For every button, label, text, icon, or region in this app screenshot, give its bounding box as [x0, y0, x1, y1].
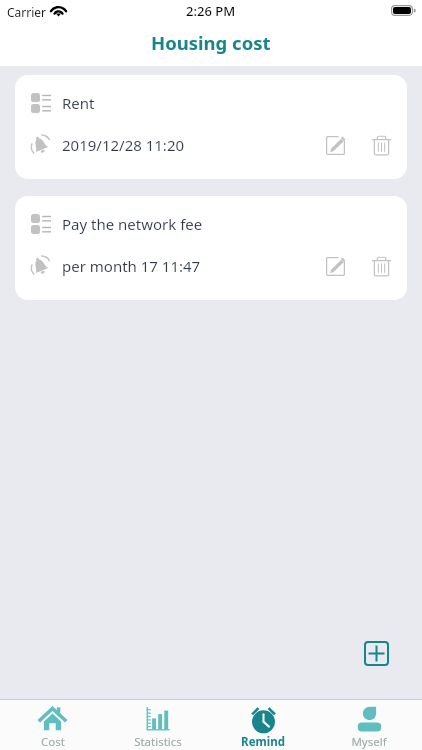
button[interactable]: Delete	[366, 254, 396, 278]
staticText: Statistics	[134, 734, 182, 750]
button[interactable]: Pay the network fee	[15, 196, 407, 300]
staticText: Pay the network fee	[62, 214, 203, 234]
button[interactable]: Add	[364, 641, 389, 666]
button[interactable]: Rent	[15, 75, 407, 179]
staticText: Remind	[241, 734, 285, 750]
button[interactable]: Cost	[0, 700, 105, 750]
staticText: 2019/12/28 11:20	[62, 135, 185, 155]
button[interactable]: Delete	[366, 133, 396, 157]
button[interactable]: Myself	[316, 700, 422, 750]
button[interactable]: Edit	[320, 254, 350, 278]
staticText: Rent	[62, 93, 95, 113]
button[interactable]: Remind	[210, 700, 316, 750]
staticText: Carrier	[7, 4, 47, 20]
staticText: Myself	[351, 734, 387, 750]
staticText: Cost	[41, 734, 65, 750]
staticText: 2:26 PM	[186, 2, 236, 20]
staticText: per month 17 11:47	[62, 256, 201, 276]
staticText: Housing cost	[151, 30, 271, 55]
button[interactable]: Statistics	[105, 700, 210, 750]
button[interactable]: Edit	[320, 133, 350, 157]
